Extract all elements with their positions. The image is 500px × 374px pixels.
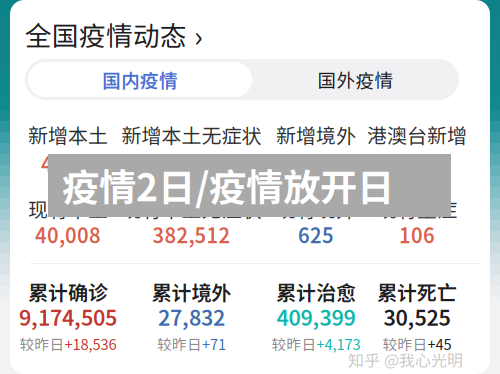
- staticText: 全国疫情动态: [25, 15, 187, 53]
- staticText: 现有重症: [377, 194, 457, 223]
- staticText: 27,832: [158, 301, 225, 332]
- staticText: 新增本土无症状: [121, 120, 261, 149]
- staticText: 较昨日: [19, 333, 64, 354]
- staticText: 409,399: [276, 301, 355, 332]
- staticText: 40,008: [35, 220, 101, 249]
- button[interactable]: 国外疫情: [252, 62, 459, 97]
- staticText: ›: [194, 13, 203, 55]
- button[interactable]: 全国疫情动态: [25, 13, 203, 55]
- staticText: 382,512: [152, 220, 230, 249]
- staticText: 较昨日: [382, 333, 427, 354]
- staticText: 25,477: [158, 149, 224, 178]
- staticText: 4,247: [41, 149, 95, 178]
- staticText: 106: [399, 220, 435, 249]
- staticText: 625: [298, 220, 334, 249]
- staticText: 较昨日: [157, 333, 202, 354]
- staticText: 知乎 @我心光明: [348, 348, 463, 371]
- staticText: 现有本土: [28, 194, 108, 223]
- staticText: 港澳台新增: [367, 120, 467, 149]
- staticText: 14,218: [384, 149, 450, 178]
- staticText: 国内疫情: [102, 66, 178, 93]
- staticText: 71: [304, 149, 328, 178]
- staticText: +71: [202, 333, 226, 354]
- button[interactable]: 国内疫情: [28, 62, 252, 97]
- staticText: 国外疫情: [317, 66, 393, 93]
- staticText: 30,525: [383, 301, 450, 332]
- staticText: +18,536: [64, 333, 116, 354]
- staticText: 9,174,505: [19, 301, 117, 332]
- staticText: 累计确诊: [28, 277, 108, 306]
- staticText: 累计治愈: [276, 277, 356, 306]
- staticText: 较昨日: [271, 333, 316, 354]
- staticText: +45: [427, 333, 451, 354]
- staticText: 现有本土无症状: [121, 194, 261, 223]
- staticText: 现有境外: [276, 194, 356, 223]
- staticText: 新增境外: [276, 120, 356, 149]
- staticText: 累计死亡: [377, 277, 457, 306]
- staticText: 累计境外: [151, 277, 231, 306]
- staticText: 新增本土: [28, 120, 108, 149]
- staticText: 疫情2日/疫情放开日: [62, 158, 394, 212]
- staticText: +4,173: [316, 333, 360, 354]
